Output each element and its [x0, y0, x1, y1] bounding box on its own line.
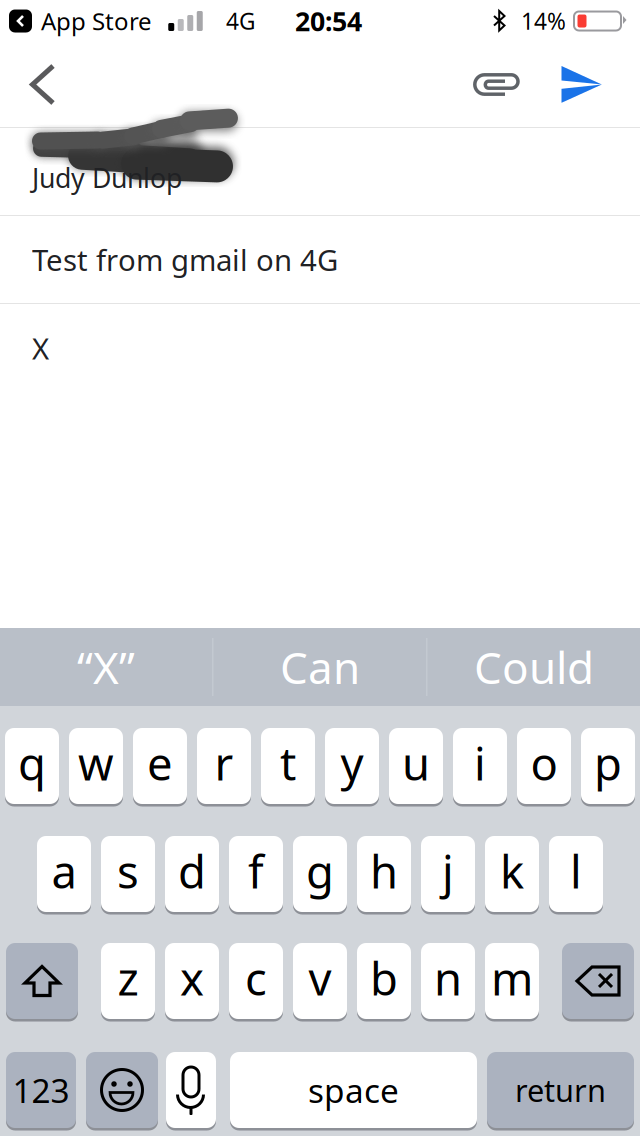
button[interactable]: Delete [562, 943, 634, 1019]
button[interactable]: return [487, 1052, 634, 1128]
button[interactable]: Could [427, 628, 640, 706]
button[interactable]: l [549, 836, 603, 912]
staticText: v [308, 948, 331, 1008]
staticText: w [78, 733, 114, 793]
button[interactable]: c [229, 943, 283, 1019]
button[interactable]: t [261, 728, 315, 804]
staticText: a [51, 841, 76, 901]
staticText: z [117, 948, 138, 1008]
button[interactable]: space [230, 1052, 477, 1128]
button[interactable]: r [197, 728, 251, 804]
staticText: space [308, 1068, 399, 1112]
button[interactable]: Back [0, 41, 86, 127]
button[interactable]: u [389, 728, 443, 804]
staticText: Could [474, 638, 594, 696]
button[interactable]: h [357, 836, 411, 912]
staticText: 20:54 [295, 3, 362, 39]
staticText: n [434, 948, 462, 1008]
button[interactable]: Can [213, 628, 426, 706]
button[interactable]: n [421, 943, 475, 1019]
staticText: g [306, 841, 334, 901]
button[interactable]: v [293, 943, 347, 1019]
staticText: j [442, 841, 454, 901]
staticText: “X” [77, 638, 135, 696]
staticText: m [491, 948, 533, 1008]
button[interactable]: k [485, 836, 539, 912]
button[interactable]: e [133, 728, 187, 804]
button[interactable]: Numbers [6, 1052, 76, 1128]
staticText: x [180, 948, 204, 1008]
staticText: Can [280, 638, 360, 696]
staticText: 14% [521, 6, 566, 36]
button[interactable]: a [37, 836, 91, 912]
button[interactable]: j [421, 836, 475, 912]
staticText: l [570, 841, 582, 901]
staticText: 123 [12, 1068, 69, 1112]
staticText: h [370, 841, 398, 901]
button[interactable]: y [325, 728, 379, 804]
staticText: f [248, 841, 264, 901]
button[interactable]: f [229, 836, 283, 912]
staticText: p [594, 733, 622, 793]
button[interactable]: p [581, 728, 635, 804]
button[interactable]: w [69, 728, 123, 804]
button[interactable]: b [357, 943, 411, 1019]
staticText: Judy Dunlop [32, 160, 182, 195]
button[interactable]: o [517, 728, 571, 804]
button[interactable]: Back to App Store [9, 2, 32, 40]
button[interactable]: Emoji [86, 1052, 158, 1128]
button[interactable]: Dictate [166, 1052, 216, 1128]
button[interactable]: z [101, 943, 155, 1019]
button[interactable]: i [453, 728, 507, 804]
button[interactable]: Send [538, 41, 626, 127]
button[interactable]: m [485, 943, 539, 1019]
staticText: r [214, 733, 233, 793]
staticText: return [515, 1070, 606, 1110]
button[interactable]: Shift [6, 943, 78, 1019]
staticText: o [530, 733, 557, 793]
staticText: X [32, 328, 49, 367]
staticText: e [147, 733, 173, 793]
button[interactable]: x [165, 943, 219, 1019]
button[interactable]: “X” [0, 628, 212, 706]
staticText: App Store [41, 5, 152, 37]
staticText: c [245, 948, 267, 1008]
staticText: 4G [226, 6, 256, 36]
button[interactable]: s [101, 836, 155, 912]
staticText: k [500, 841, 524, 901]
staticText: q [18, 733, 46, 793]
staticText: Test from gmail on 4G [32, 240, 338, 279]
button[interactable]: Attach file [452, 41, 538, 127]
button[interactable]: d [165, 836, 219, 912]
staticText: i [474, 733, 486, 793]
staticText: t [280, 733, 296, 793]
staticText: u [402, 733, 430, 793]
button[interactable]: q [5, 728, 59, 804]
staticText: d [178, 841, 206, 901]
staticText: s [117, 841, 139, 901]
staticText: b [370, 948, 398, 1008]
button[interactable]: g [293, 836, 347, 912]
staticText: y [340, 733, 363, 793]
